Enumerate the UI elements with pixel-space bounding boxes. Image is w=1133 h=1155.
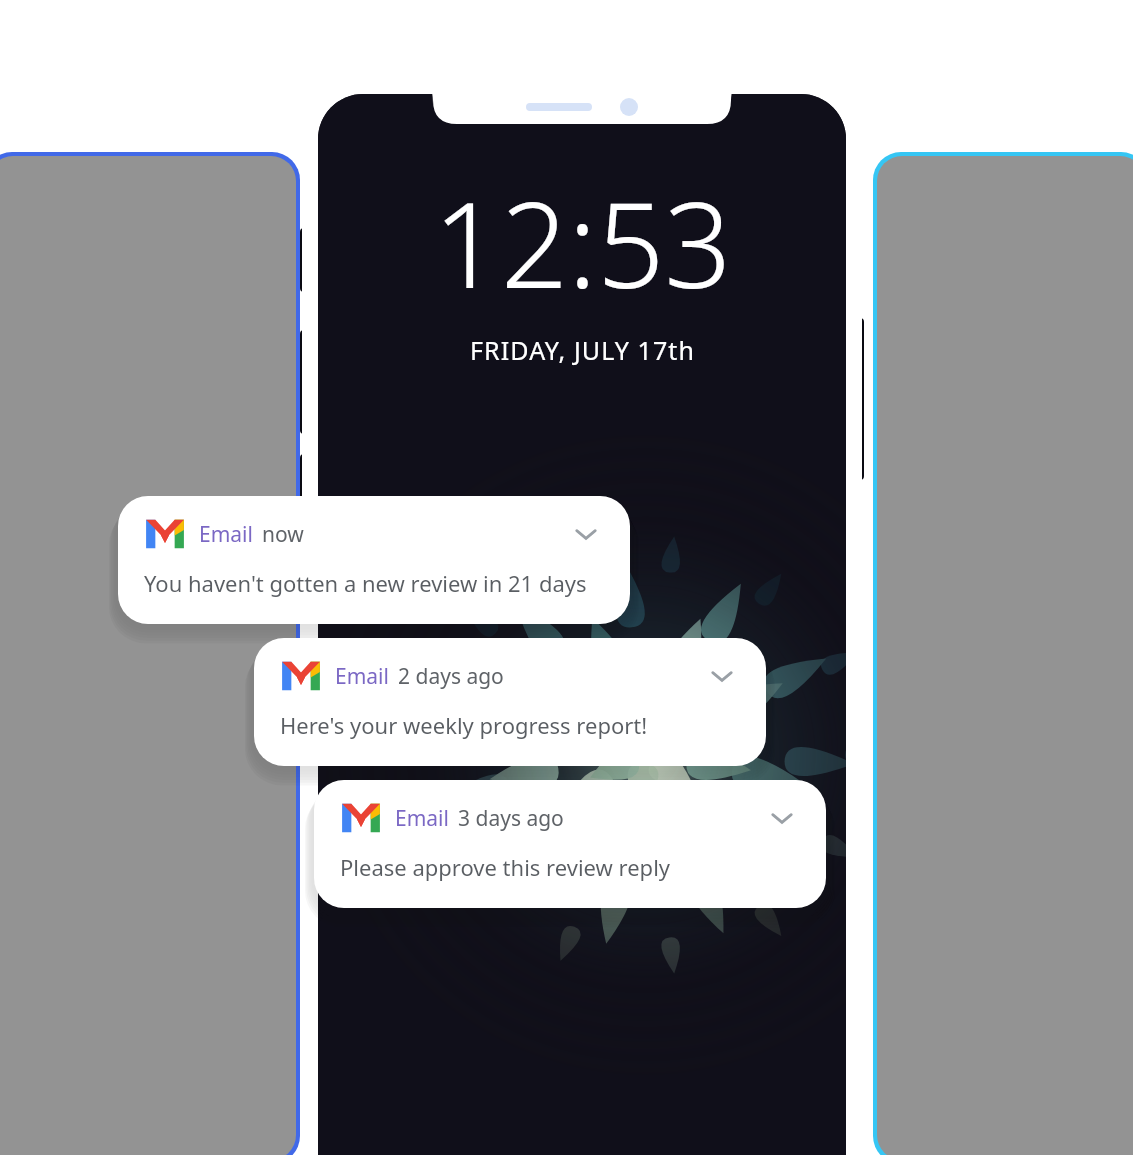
staticText: 2 days ago — [398, 662, 504, 691]
button[interactable] — [873, 152, 1133, 1155]
button[interactable]: Expand notification — [568, 516, 604, 552]
staticText: 3 days ago — [458, 804, 564, 833]
staticText: Please approve this review reply — [340, 852, 671, 882]
staticText: Here's your weekly progress report! — [280, 710, 648, 740]
button[interactable]: Email — [254, 638, 766, 766]
button[interactable]: Expand notification — [704, 658, 740, 694]
button[interactable] — [0, 152, 300, 1155]
staticText: 12:53 — [433, 162, 732, 323]
staticText: now — [262, 520, 304, 549]
staticText: Email — [395, 804, 449, 833]
staticText: Email — [199, 520, 253, 549]
staticText: FRIDAY, JULY 17th — [470, 333, 695, 367]
button[interactable]: Email — [314, 780, 826, 908]
button[interactable]: Email — [118, 496, 630, 624]
staticText: You haven't gotten a new review in 21 da… — [144, 568, 587, 598]
staticText: Email — [335, 662, 389, 691]
button[interactable]: Expand notification — [764, 800, 800, 836]
